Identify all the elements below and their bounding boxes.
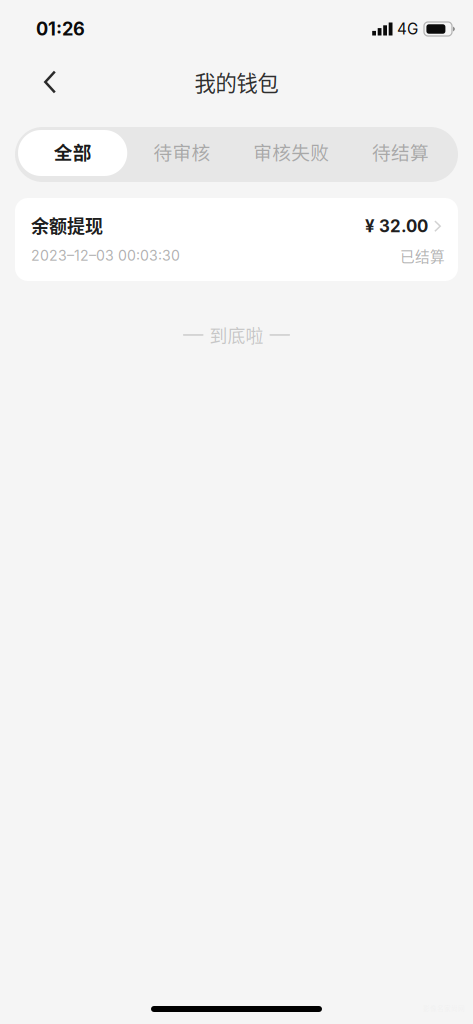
staticText: ¥ 32.00 [365,216,428,236]
button[interactable]: 余额提现 [0,198,473,281]
staticText: 01:26 [36,18,85,40]
button[interactable]: 全部 [18,130,127,179]
staticText: 到底啦 [209,322,263,348]
staticText: 待审核 [153,138,210,165]
staticText: 审核失败 [253,138,329,165]
staticText: 待结算 [372,138,429,165]
button[interactable]: 待结算 [346,130,455,179]
staticText: 已结算 [400,245,445,266]
staticText: 全部 [54,138,92,165]
staticText: 2023–12–03 00:03:30 [31,247,180,264]
button[interactable]: Back [28,60,72,104]
button[interactable]: 待审核 [127,130,236,179]
button[interactable]: 审核失败 [236,130,346,179]
staticText: 余额提现 [31,212,103,238]
staticText: 4G [397,20,418,38]
staticText: 我的钱包 [194,67,278,97]
